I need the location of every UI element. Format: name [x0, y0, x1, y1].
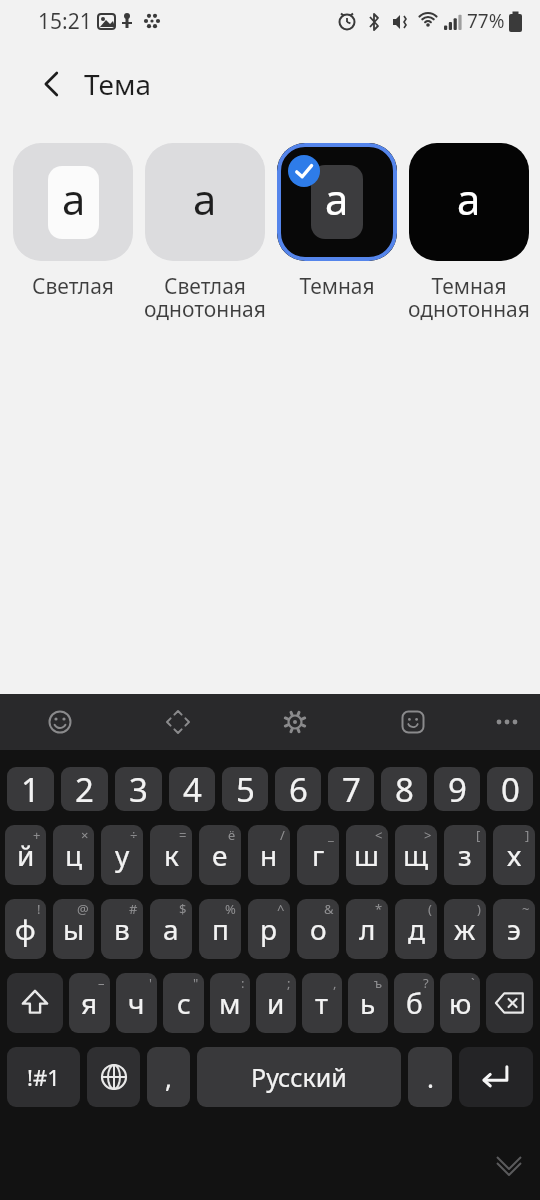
button[interactable]: й	[5, 825, 46, 885]
staticText: >	[424, 826, 432, 844]
staticText: 5	[236, 767, 255, 811]
staticText: ×	[81, 826, 89, 844]
button[interactable]: а	[277, 143, 397, 301]
staticText: :	[241, 974, 245, 992]
button[interactable]	[271, 698, 319, 746]
staticText: ;	[287, 974, 291, 992]
staticText: и	[267, 984, 285, 1022]
staticText: 6	[289, 767, 308, 811]
button[interactable]: а	[150, 899, 192, 959]
staticText: 0	[501, 767, 520, 811]
staticText: ]	[525, 826, 530, 844]
button[interactable]: ц	[53, 825, 94, 885]
button[interactable]: я	[69, 973, 110, 1033]
staticText: Темная однотонная	[394, 272, 540, 323]
staticText: '	[149, 974, 152, 992]
button[interactable]: .	[408, 1047, 452, 1107]
staticText: й	[17, 836, 35, 874]
staticText: п	[212, 910, 229, 948]
staticText: !#1	[27, 1062, 60, 1092]
staticText: д	[408, 910, 425, 948]
button[interactable]: ш	[346, 825, 388, 885]
staticText: _	[328, 826, 334, 844]
button[interactable]: б	[394, 973, 434, 1033]
button[interactable]: х	[493, 825, 535, 885]
button[interactable]: ж	[444, 899, 486, 959]
staticText: у	[115, 836, 130, 874]
button[interactable]: ,	[147, 1047, 190, 1107]
button[interactable]: 3	[115, 767, 162, 811]
staticText: *	[375, 900, 383, 918]
button[interactable]: э	[493, 899, 535, 959]
staticText: ё	[228, 826, 236, 844]
button[interactable]: Русский	[197, 1047, 401, 1107]
staticText: а	[457, 170, 481, 227]
button[interactable]: з	[444, 825, 486, 885]
button[interactable]: и	[256, 973, 296, 1033]
button[interactable]: 1	[7, 767, 54, 811]
button[interactable]: 2	[61, 767, 108, 811]
button[interactable]	[154, 698, 202, 746]
button[interactable]: 5	[222, 767, 268, 811]
staticText: 7	[342, 767, 361, 811]
staticText: (	[428, 900, 432, 918]
button[interactable]: 9	[434, 767, 480, 811]
button[interactable]: в	[101, 899, 143, 959]
button[interactable]	[87, 1047, 140, 1107]
staticText: х	[507, 836, 522, 874]
button[interactable]: 0	[487, 767, 533, 811]
button[interactable]: 4	[169, 767, 215, 811]
button[interactable]: р	[248, 899, 290, 959]
button[interactable]: а	[13, 143, 133, 301]
button[interactable]	[389, 698, 437, 746]
button[interactable]: к	[150, 825, 192, 885]
staticText: 2	[75, 767, 94, 811]
button[interactable]: ф	[5, 899, 46, 959]
button[interactable]: у	[101, 825, 143, 885]
button[interactable]: а	[409, 143, 529, 323]
staticText: в	[114, 910, 130, 948]
button[interactable]: а	[145, 143, 265, 323]
button[interactable]: л	[346, 899, 388, 959]
staticText: ^	[277, 900, 285, 918]
button[interactable]	[7, 973, 63, 1033]
staticText: 9	[448, 767, 467, 811]
button[interactable]: с	[163, 973, 204, 1033]
button[interactable]: 8	[381, 767, 427, 811]
button[interactable]: ь	[348, 973, 388, 1033]
staticText: –	[98, 974, 105, 992]
button[interactable]: п	[199, 899, 241, 959]
button[interactable]: д	[395, 899, 437, 959]
button[interactable]: ч	[116, 973, 157, 1033]
staticText: "	[193, 974, 199, 992]
staticText: с	[177, 984, 191, 1022]
staticText: `	[471, 974, 475, 992]
staticText: э	[507, 910, 521, 948]
button[interactable]	[459, 1047, 533, 1107]
button[interactable]: н	[248, 825, 290, 885]
button[interactable]: 7	[328, 767, 374, 811]
staticText: <	[375, 826, 383, 844]
button[interactable]: г	[297, 825, 339, 885]
staticText: .	[427, 1060, 434, 1095]
button[interactable]: !#1	[7, 1047, 80, 1107]
button[interactable]	[486, 1145, 532, 1185]
staticText: ?	[423, 974, 429, 992]
button[interactable]: м	[210, 973, 250, 1033]
button[interactable]	[30, 62, 74, 106]
button[interactable]	[486, 973, 533, 1033]
button[interactable]: о	[297, 899, 339, 959]
staticText: о	[310, 910, 327, 948]
staticText: ц	[65, 836, 83, 874]
staticText: ж	[454, 910, 476, 948]
button[interactable]: ы	[53, 899, 94, 959]
button[interactable]: 6	[275, 767, 321, 811]
staticText: ~	[522, 900, 530, 918]
button[interactable]: е	[199, 825, 241, 885]
button[interactable]: щ	[395, 825, 437, 885]
button[interactable]	[483, 698, 531, 746]
button[interactable]: т	[302, 973, 342, 1033]
button[interactable]	[36, 698, 84, 746]
button[interactable]: ю	[440, 973, 480, 1033]
staticText: ю	[449, 984, 472, 1022]
